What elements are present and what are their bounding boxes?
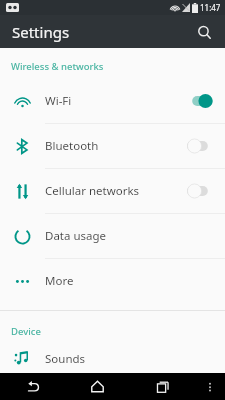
button[interactable]: Search: [191, 19, 217, 45]
button[interactable]: Data usage: [0, 214, 225, 258]
staticText: Sounds: [45, 351, 225, 367]
button[interactable]: Recents: [130, 373, 195, 400]
staticText: More: [45, 273, 225, 289]
button[interactable]: Bluetooth: [0, 124, 225, 168]
button[interactable]: Menu: [195, 373, 225, 400]
staticText: Bluetooth: [45, 138, 187, 154]
button[interactable]: Wi-Fi: [0, 79, 225, 123]
staticText: Wireless & networks: [11, 60, 104, 73]
staticText: Settings: [12, 22, 70, 42]
button[interactable]: Home: [65, 373, 130, 400]
button[interactable]: Toggle off: [187, 138, 213, 154]
staticText: Device: [11, 325, 41, 338]
staticText: Data usage: [45, 228, 225, 244]
staticText: Wi-Fi: [45, 93, 187, 109]
button[interactable]: Cellular networks: [0, 169, 225, 213]
button[interactable]: Back: [0, 373, 65, 400]
button[interactable]: Toggle off: [187, 183, 213, 199]
staticText: Cellular networks: [45, 183, 187, 199]
staticText: 11:47: [200, 2, 221, 13]
button[interactable]: Sounds: [0, 344, 225, 373]
button[interactable]: Toggle on: [187, 93, 213, 109]
button[interactable]: More: [0, 259, 225, 303]
